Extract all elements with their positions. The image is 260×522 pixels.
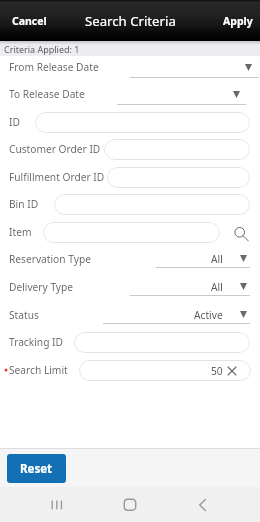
staticText: Reset: [20, 461, 53, 477]
button[interactable]: To Release Date: [0, 80, 260, 108]
staticText: From Release Date: [9, 60, 99, 74]
staticText: ID: [9, 115, 20, 129]
button[interactable]: Recent apps: [44, 492, 69, 517]
staticText: Bin ID: [9, 197, 39, 211]
staticText: Item: [9, 225, 32, 239]
staticText: Search Criteria: [85, 12, 176, 30]
staticText: All: [211, 280, 223, 294]
button[interactable]: Search items: [231, 224, 249, 242]
button[interactable]: Delivery Type: [0, 273, 260, 301]
button[interactable]: [107, 167, 250, 188]
staticText: Search Limit: [9, 363, 68, 377]
staticText: Apply: [223, 14, 253, 28]
button[interactable]: 50: [79, 360, 251, 381]
staticText: Reservation Type: [9, 252, 91, 266]
staticText: 50: [211, 364, 223, 378]
button[interactable]: Reset: [7, 454, 66, 483]
staticText: Criteria Applied: 1: [4, 43, 80, 55]
staticText: Tracking ID: [9, 335, 63, 349]
staticText: Status: [9, 308, 39, 322]
staticText: Cancel: [12, 14, 47, 28]
staticText: To Release Date: [9, 87, 85, 101]
button[interactable]: From Release Date: [0, 53, 260, 81]
button[interactable]: Cancel: [0, 0, 62, 41]
staticText: Customer Order ID: [9, 142, 101, 156]
staticText: Active: [194, 308, 223, 322]
button[interactable]: [35, 112, 250, 133]
staticText: All: [211, 252, 223, 266]
button[interactable]: Apply: [202, 0, 260, 41]
button[interactable]: Status: [0, 301, 260, 329]
staticText: Fulfillment Order ID: [9, 170, 105, 184]
button[interactable]: [43, 222, 220, 243]
button[interactable]: [74, 332, 250, 353]
button[interactable]: [104, 139, 250, 160]
button[interactable]: Home: [117, 492, 142, 517]
staticText: Delivery Type: [9, 280, 74, 294]
button[interactable]: Back: [190, 492, 215, 517]
button[interactable]: Reservation Type: [0, 245, 260, 273]
button[interactable]: [54, 194, 250, 215]
